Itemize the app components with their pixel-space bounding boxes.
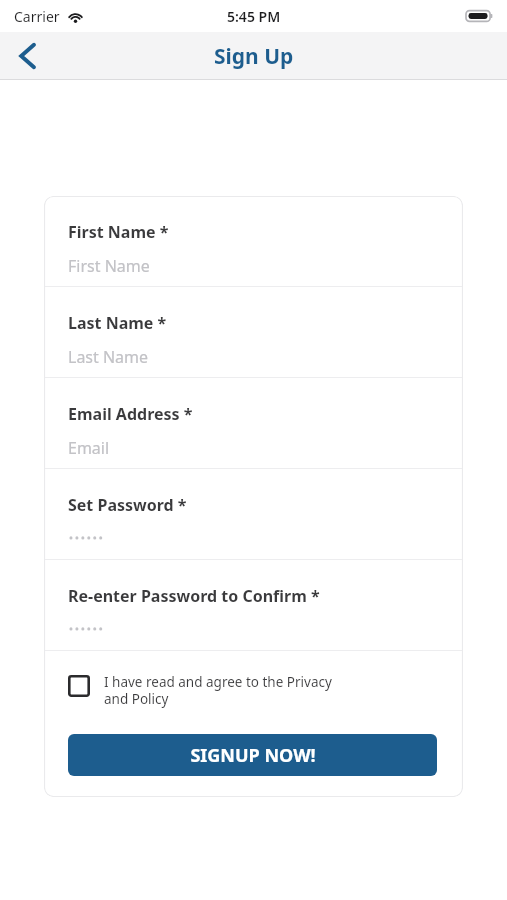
button[interactable]: First Name * [44,196,463,286]
staticText: Re-enter Password to Confirm * [68,585,320,607]
staticText: I have read and agree to the Privacy and… [104,673,356,708]
staticText: Last Name * [68,312,167,334]
staticText: Set Password * [68,494,187,516]
button[interactable]: Email Address * [44,378,463,468]
button[interactable]: I have read and agree to the Privacy and… [68,673,437,708]
staticText: Email Address * [68,403,193,425]
button[interactable]: Set Password * [44,469,463,559]
button[interactable]: Re-enter Password to Confirm * [44,560,463,650]
staticText: Carrier [14,7,60,26]
button[interactable]: Last Name * [44,287,463,377]
staticText: Sign Up [214,42,294,71]
staticText: Last Name [68,346,149,368]
staticText: 5:45 PM [227,7,281,26]
button[interactable]: SIGNUP NOW! [68,734,437,776]
staticText: Email [68,437,110,459]
button[interactable]: Back [0,32,54,80]
staticText: First Name [68,255,150,277]
staticText: First Name * [68,221,169,243]
staticText: SIGNUP NOW! [190,743,316,768]
